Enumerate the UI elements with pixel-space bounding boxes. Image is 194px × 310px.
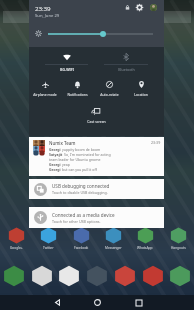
staticText: but can you pull it off — [62, 167, 97, 172]
button[interactable]: Lock rotation — [125, 5, 130, 10]
staticText: Touch for other USB options. — [52, 219, 101, 224]
staticText: Messenger — [105, 246, 122, 250]
button[interactable]: Back — [49, 295, 65, 310]
staticText: Notifications — [67, 92, 88, 97]
staticText: Georgi — [49, 162, 61, 167]
button[interactable]: Numix Team — [29, 137, 164, 176]
staticText: So, I'm nominated for acting — [64, 152, 111, 157]
button[interactable]: Cast screen — [66, 102, 126, 124]
staticText: USB debugging connected — [52, 183, 110, 189]
staticText: team leader for Ubuntu gnome — [49, 157, 101, 162]
button[interactable]: Home — [89, 295, 105, 310]
staticText: Twitter — [43, 246, 54, 250]
staticText: Google+ — [10, 246, 23, 250]
button[interactable]: USB debugging connected — [29, 179, 164, 199]
staticText: 23:39 — [151, 140, 161, 145]
button[interactable]: Bluetooth — [96, 47, 156, 75]
staticText: Facebook — [74, 246, 89, 250]
staticText: Satyajit — [49, 152, 63, 157]
button[interactable]: Airplane mode — [29, 75, 61, 102]
button[interactable]: Notifications — [61, 75, 93, 102]
staticText: yuppity boom de boom — [62, 147, 101, 152]
staticText: Sun, June 29 — [35, 13, 60, 19]
staticText: Cast screen — [87, 119, 106, 124]
staticText: WhatsApp — [137, 246, 153, 250]
staticText: Auto-rotate — [100, 92, 119, 97]
staticText: Touch to disable USB debugging. — [52, 190, 108, 195]
button[interactable]: Brightness — [100, 31, 106, 37]
button[interactable]: Recent apps — [131, 295, 147, 310]
staticText: Airplane mode — [33, 92, 57, 97]
staticText: Connected as a media device — [52, 212, 115, 218]
button[interactable]: Settings — [136, 4, 143, 11]
staticText: Georgi — [49, 167, 61, 172]
button[interactable]: Auto-rotate — [93, 75, 125, 102]
staticText: Bluetooth — [118, 67, 135, 72]
button[interactable]: Connected as a media device — [29, 207, 164, 228]
staticText: BG-WIFI — [60, 67, 74, 72]
staticText: Hangouts — [171, 246, 186, 250]
staticText: Numix Team — [49, 140, 76, 146]
staticText: 23:39 — [35, 4, 51, 12]
staticText: Georgi — [49, 147, 61, 152]
button[interactable]: Account — [150, 4, 157, 11]
staticText: Location — [134, 92, 148, 97]
button[interactable]: Location — [125, 75, 157, 102]
staticText: yeap — [62, 162, 70, 167]
button[interactable]: BG-WIFI — [37, 47, 96, 75]
